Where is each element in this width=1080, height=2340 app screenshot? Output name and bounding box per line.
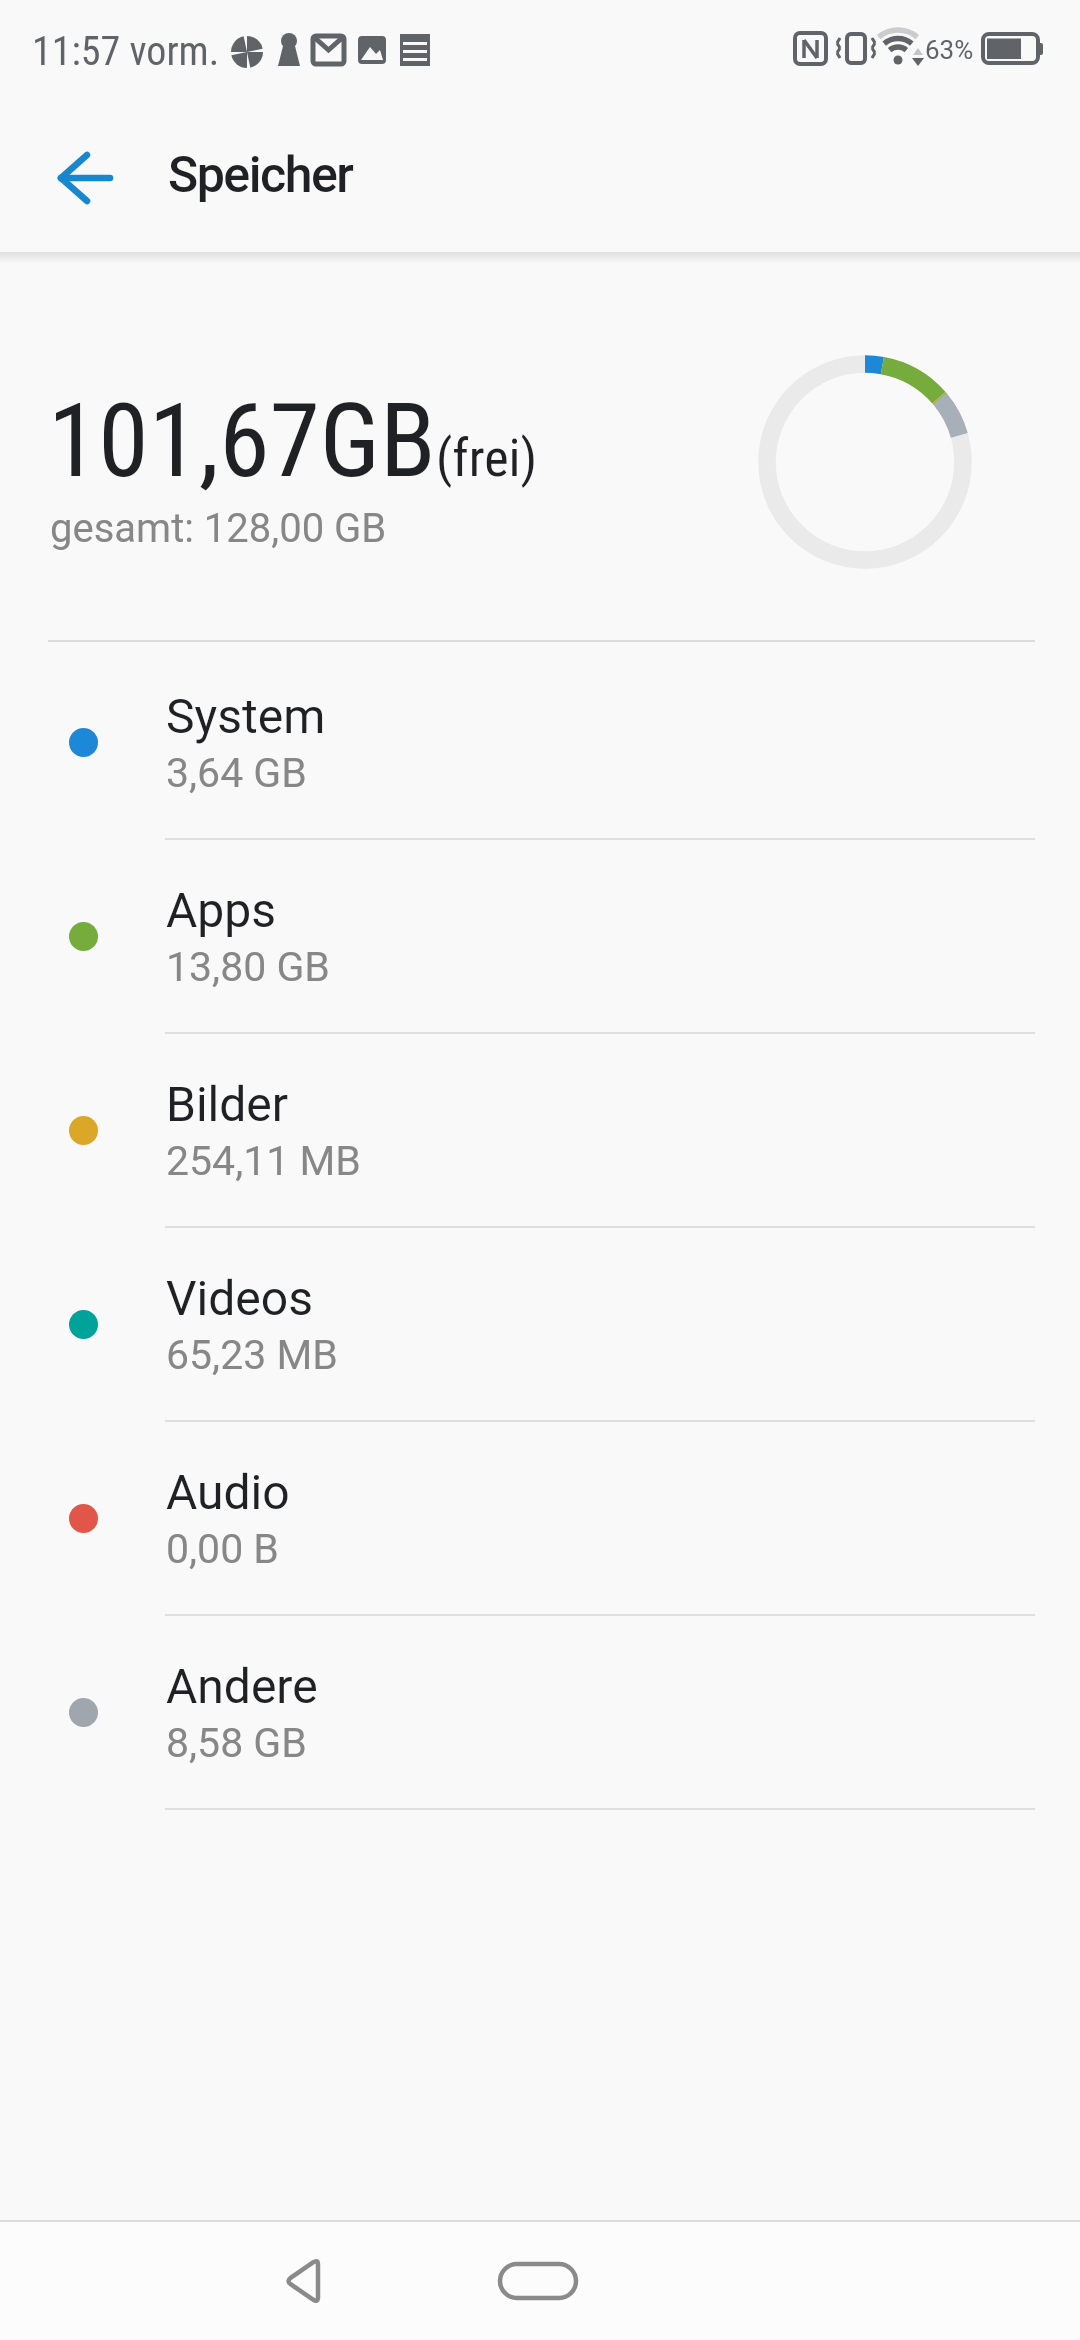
staticText: System [166,688,326,744]
button[interactable]: Audio [0,1422,1080,1616]
staticText: 13,80 GB [166,943,330,991]
staticText: Audio [166,1464,290,1520]
button[interactable] [245,2222,365,2340]
button[interactable] [35,138,135,218]
staticText: (frei) [436,428,538,489]
button[interactable]: System [0,646,1080,840]
staticText: Andere [166,1658,318,1714]
staticText: 3,64 GB [166,749,307,797]
staticText: Apps [166,882,276,938]
staticText: Videos [166,1270,313,1326]
staticText: 8,58 GB [166,1719,307,1767]
staticText: gesamt: 128,00 GB [50,505,387,552]
button[interactable]: Videos [0,1228,1080,1422]
button[interactable]: Andere [0,1616,1080,1810]
staticText: 11:57 vorm. [32,28,220,75]
staticText: 0,00 B [166,1525,279,1573]
staticText: 254,11 MB [166,1137,361,1185]
staticText: Bilder [166,1076,289,1132]
staticText: 63% [925,35,974,65]
button[interactable]: Bilder [0,1034,1080,1228]
staticText: Speicher [168,146,353,205]
staticText: 65,23 MB [166,1331,338,1379]
staticText: 101,67GB [48,381,436,501]
button[interactable] [478,2222,598,2340]
button[interactable]: Apps [0,840,1080,1034]
